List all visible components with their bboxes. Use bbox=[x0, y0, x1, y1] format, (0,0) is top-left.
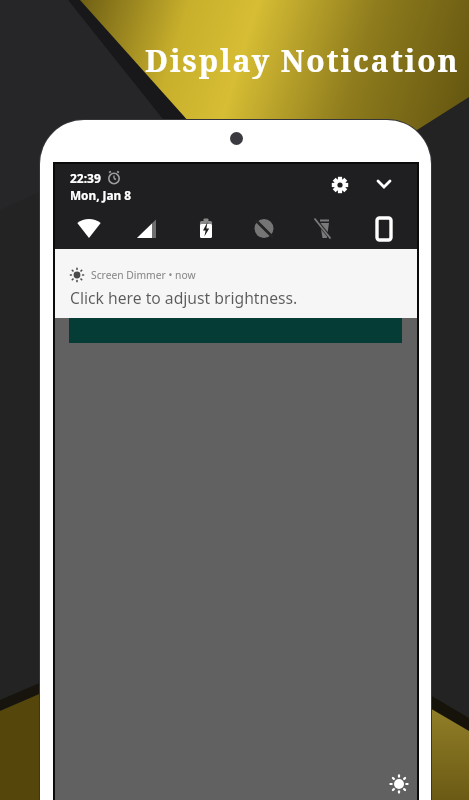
button[interactable] bbox=[307, 214, 337, 244]
button[interactable] bbox=[369, 214, 399, 244]
staticText: Mon, Jan 8 bbox=[70, 187, 132, 203]
button[interactable] bbox=[329, 174, 351, 196]
button[interactable]: Screen Dimmer • now bbox=[55, 249, 417, 318]
staticText: Click here to adjust brightness. bbox=[70, 287, 298, 308]
button[interactable] bbox=[128, 214, 164, 244]
button[interactable] bbox=[249, 214, 279, 244]
button[interactable] bbox=[191, 214, 221, 244]
button[interactable] bbox=[69, 214, 109, 244]
button[interactable] bbox=[385, 770, 413, 798]
staticText: Screen Dimmer • now bbox=[91, 268, 196, 282]
staticText: Display Notication bbox=[145, 40, 460, 81]
button[interactable] bbox=[373, 173, 395, 195]
staticText: 22:39 bbox=[70, 170, 101, 186]
